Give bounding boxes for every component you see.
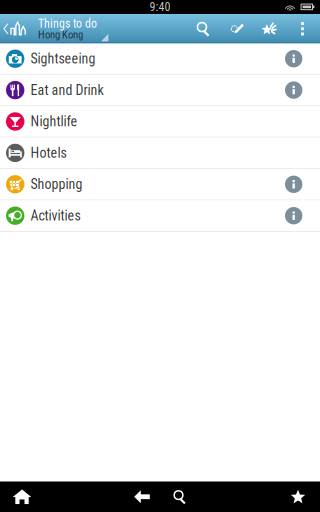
button[interactable]: Search (187, 14, 220, 43)
button[interactable]: Sightseeing (0, 43, 320, 74)
button[interactable]: Highlights (253, 14, 286, 43)
button[interactable]: Things to do (38, 14, 150, 43)
button[interactable]: Hotels (0, 138, 320, 168)
staticText: Hong Kong (38, 28, 83, 41)
button[interactable]: Activities (0, 200, 320, 231)
staticText: 9:40 (149, 0, 170, 14)
button[interactable]: Eat and Drink (0, 75, 320, 105)
staticText: Eat and Drink (30, 82, 103, 98)
button[interactable]: Search (165, 481, 195, 512)
staticText: Activities (30, 207, 80, 224)
button[interactable]: Back (3, 14, 37, 43)
staticText: Shopping (30, 176, 82, 192)
staticText: Hotels (30, 145, 66, 161)
button[interactable]: Edit trip (220, 14, 253, 43)
button[interactable]: Favorites (280, 481, 316, 512)
button[interactable]: More options (286, 14, 319, 43)
button[interactable]: Shopping (0, 169, 320, 199)
button[interactable]: Nightlife (0, 106, 320, 137)
staticText: Sightseeing (30, 50, 95, 67)
button[interactable]: Home (4, 481, 40, 512)
staticText: Nightlife (30, 113, 77, 130)
staticText: Things to do (38, 16, 97, 31)
button[interactable]: Back (125, 481, 159, 512)
